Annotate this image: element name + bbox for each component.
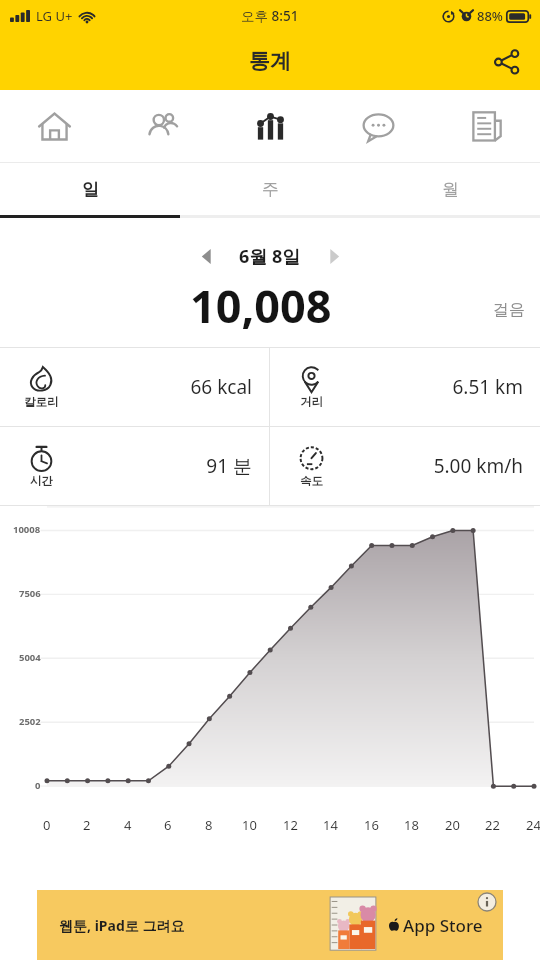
button[interactable]: Friends	[108, 90, 216, 162]
button[interactable]: Previous day	[187, 239, 225, 273]
staticText: 속도	[300, 474, 323, 488]
button[interactable]: Next day	[315, 239, 353, 273]
staticText: 0	[35, 779, 41, 792]
staticText: 16	[364, 816, 379, 834]
button[interactable]: Statistics	[216, 90, 324, 162]
button[interactable]: Chat	[324, 90, 432, 162]
staticText: 22	[485, 816, 500, 834]
staticText: 걸음	[493, 300, 525, 320]
staticText: 거리	[300, 395, 323, 409]
staticText: 시간	[30, 474, 53, 488]
button[interactable]: 월	[360, 163, 540, 215]
staticText: 5004	[19, 651, 41, 664]
staticText: 웹툰, iPad로 그려요	[59, 916, 185, 935]
staticText: LG U+	[36, 7, 73, 25]
button[interactable]: Feed	[432, 90, 540, 162]
staticText: 칼로리	[24, 395, 59, 409]
staticText: App Store	[403, 914, 483, 937]
staticText: 월	[442, 179, 459, 200]
staticText: 12	[283, 816, 298, 834]
staticText: 0	[43, 816, 51, 834]
staticText: 20	[445, 816, 460, 834]
button[interactable]: 속도	[270, 427, 540, 505]
staticText: 10,008	[190, 275, 332, 336]
button[interactable]: 주	[180, 163, 360, 215]
button[interactable]: 칼로리	[0, 348, 269, 426]
button[interactable]: Home	[0, 90, 108, 162]
staticText: 88%	[477, 7, 503, 25]
staticText: 10	[242, 816, 257, 834]
staticText: 18	[404, 816, 419, 834]
staticText: 24	[526, 816, 540, 834]
staticText: 2502	[19, 715, 41, 728]
staticText: 6월 8일	[239, 244, 301, 269]
staticText: 14	[323, 816, 338, 834]
staticText: 일	[82, 179, 99, 200]
staticText: 66 kcal	[68, 374, 252, 400]
staticText: 주	[262, 179, 279, 200]
staticText: 6.51 km	[338, 374, 523, 400]
staticText: 5.00 km/h	[338, 453, 523, 479]
button[interactable]: 일	[0, 163, 180, 215]
button[interactable]: 거리	[270, 348, 540, 426]
button[interactable]: 시간	[0, 427, 269, 505]
staticText: 2	[83, 816, 91, 834]
staticText: 오후 8:51	[241, 7, 299, 25]
button[interactable]: 웹툰, iPad로 그려요	[37, 890, 503, 960]
staticText: 91 분	[68, 453, 252, 479]
button[interactable]: Share	[480, 35, 532, 87]
staticText: 통계	[249, 48, 291, 74]
staticText: 6	[164, 816, 172, 834]
staticText: 4	[124, 816, 132, 834]
staticText: 8	[205, 816, 213, 834]
staticText: 7506	[19, 587, 41, 600]
staticText: 10008	[13, 523, 41, 536]
button[interactable]: Ad info	[477, 892, 497, 912]
